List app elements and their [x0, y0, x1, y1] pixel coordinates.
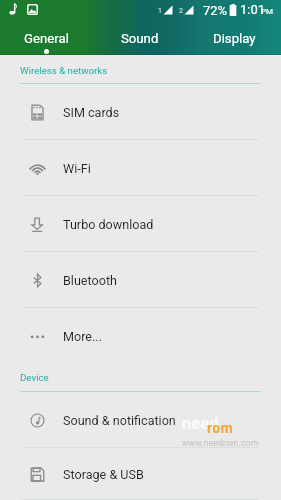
button[interactable]: Sound — [93, 22, 187, 55]
staticText: Wi-Fi — [63, 161, 91, 176]
staticText: 72% — [203, 3, 228, 18]
staticText: SIM cards — [63, 105, 120, 120]
staticText: More... — [63, 329, 102, 344]
staticText: General — [24, 31, 69, 46]
staticText: Sound & notification — [63, 413, 176, 428]
button[interactable]: SIM cards — [0, 84, 281, 140]
button[interactable]: Turbo download — [0, 196, 281, 252]
staticText: 1:01 — [240, 2, 266, 17]
staticText: Turbo download — [63, 217, 154, 232]
staticText: Device — [20, 372, 49, 383]
staticText: need — [182, 414, 219, 433]
button[interactable]: Display — [187, 22, 281, 55]
staticText: Sound — [121, 31, 159, 46]
button[interactable]: More... — [0, 308, 281, 364]
button[interactable]: Storage & USB — [0, 448, 281, 500]
staticText: 1 — [158, 7, 162, 15]
staticText: Wireless & networks — [20, 65, 108, 76]
staticText: PM — [261, 7, 274, 16]
button[interactable]: Sound & notification — [0, 392, 281, 448]
staticText: Display — [213, 31, 256, 46]
button[interactable]: Bluetooth — [0, 252, 281, 308]
button[interactable]: General — [0, 22, 93, 55]
staticText: Bluetooth — [63, 273, 117, 288]
button[interactable]: Wi-Fi — [0, 140, 281, 196]
staticText: rom — [207, 420, 234, 436]
staticText: Storage & USB — [63, 467, 144, 482]
staticText: www.needrom.com — [182, 438, 259, 448]
staticText: 2 — [179, 7, 183, 15]
